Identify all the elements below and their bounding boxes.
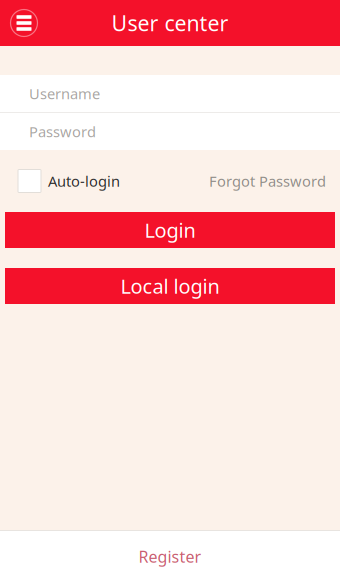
staticText: Forgot Password xyxy=(209,171,326,191)
button[interactable]: Local login xyxy=(5,268,335,304)
button[interactable]: Auto-login xyxy=(18,169,120,192)
staticText: Username xyxy=(29,84,100,103)
button[interactable]: Forgot Password xyxy=(209,171,326,191)
staticText: User center xyxy=(111,9,228,37)
staticText: Register xyxy=(138,546,201,567)
staticText: Auto-login xyxy=(48,171,120,191)
button[interactable]: Login xyxy=(5,212,335,248)
button[interactable]: Menu xyxy=(0,0,48,46)
staticText: Login xyxy=(144,217,195,243)
staticText: Local login xyxy=(120,273,219,299)
button[interactable]: Register xyxy=(0,530,340,582)
staticText: Password xyxy=(29,122,96,141)
